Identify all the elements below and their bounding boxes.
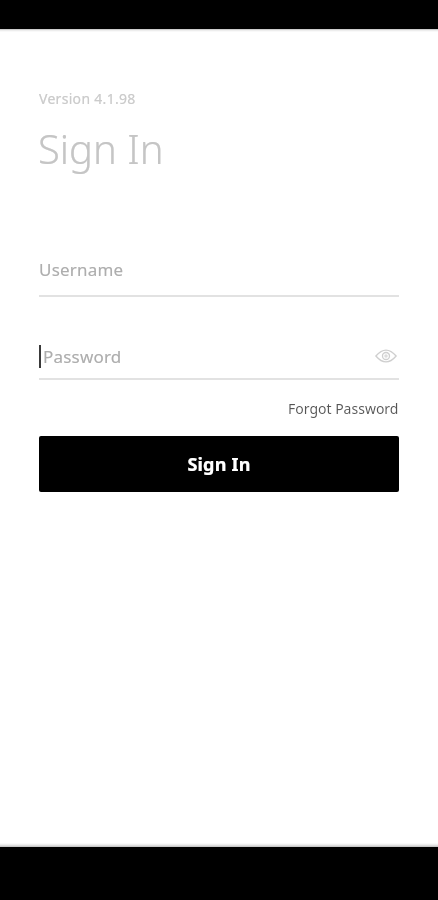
button[interactable]: Show password <box>373 343 399 369</box>
button[interactable]: Username <box>0 258 438 297</box>
staticText: Sign In <box>187 452 251 477</box>
button[interactable]: Sign In <box>39 436 399 492</box>
button[interactable]: Password <box>0 343 438 380</box>
staticText: Version 4.1.98 <box>39 89 136 108</box>
staticText: Password <box>43 345 122 368</box>
button[interactable]: Forgot Password <box>276 397 438 420</box>
staticText: Forgot Password <box>288 399 399 418</box>
staticText: Sign In <box>38 121 164 175</box>
staticText: Username <box>39 258 124 281</box>
